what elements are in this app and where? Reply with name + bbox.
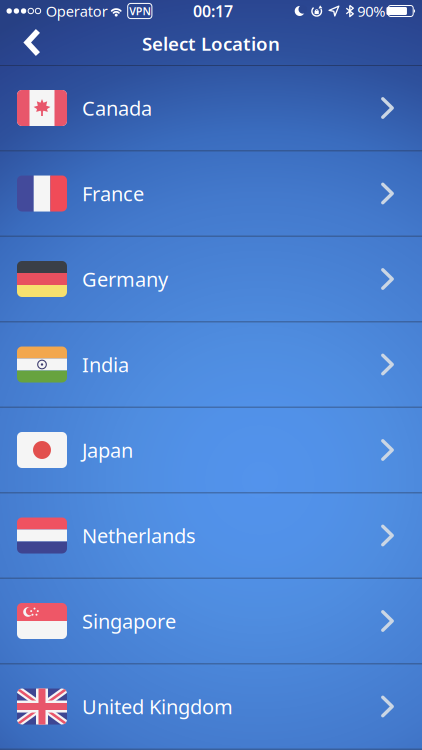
- button[interactable]: Netherlands: [0, 493, 422, 579]
- staticText: Operator: [46, 1, 108, 21]
- button[interactable]: India: [0, 322, 422, 408]
- button[interactable]: Back: [0, 23, 41, 64]
- staticText: VPN: [129, 4, 150, 18]
- staticText: Canada: [82, 95, 152, 121]
- staticText: 00:17: [193, 0, 233, 22]
- staticText: 90%: [357, 1, 385, 21]
- staticText: Select Location: [142, 31, 280, 56]
- button[interactable]: Germany: [0, 237, 422, 322]
- button[interactable]: France: [0, 151, 422, 237]
- staticText: Netherlands: [82, 522, 196, 549]
- staticText: Germany: [82, 266, 168, 292]
- button[interactable]: United Kingdom: [0, 664, 422, 750]
- staticText: India: [82, 351, 129, 378]
- staticText: France: [82, 180, 144, 207]
- staticText: United Kingdom: [82, 693, 233, 720]
- button[interactable]: Singapore: [0, 579, 422, 664]
- staticText: Japan: [82, 437, 133, 463]
- button[interactable]: Japan: [0, 408, 422, 493]
- staticText: Singapore: [82, 608, 176, 634]
- button[interactable]: Canada: [0, 66, 422, 151]
